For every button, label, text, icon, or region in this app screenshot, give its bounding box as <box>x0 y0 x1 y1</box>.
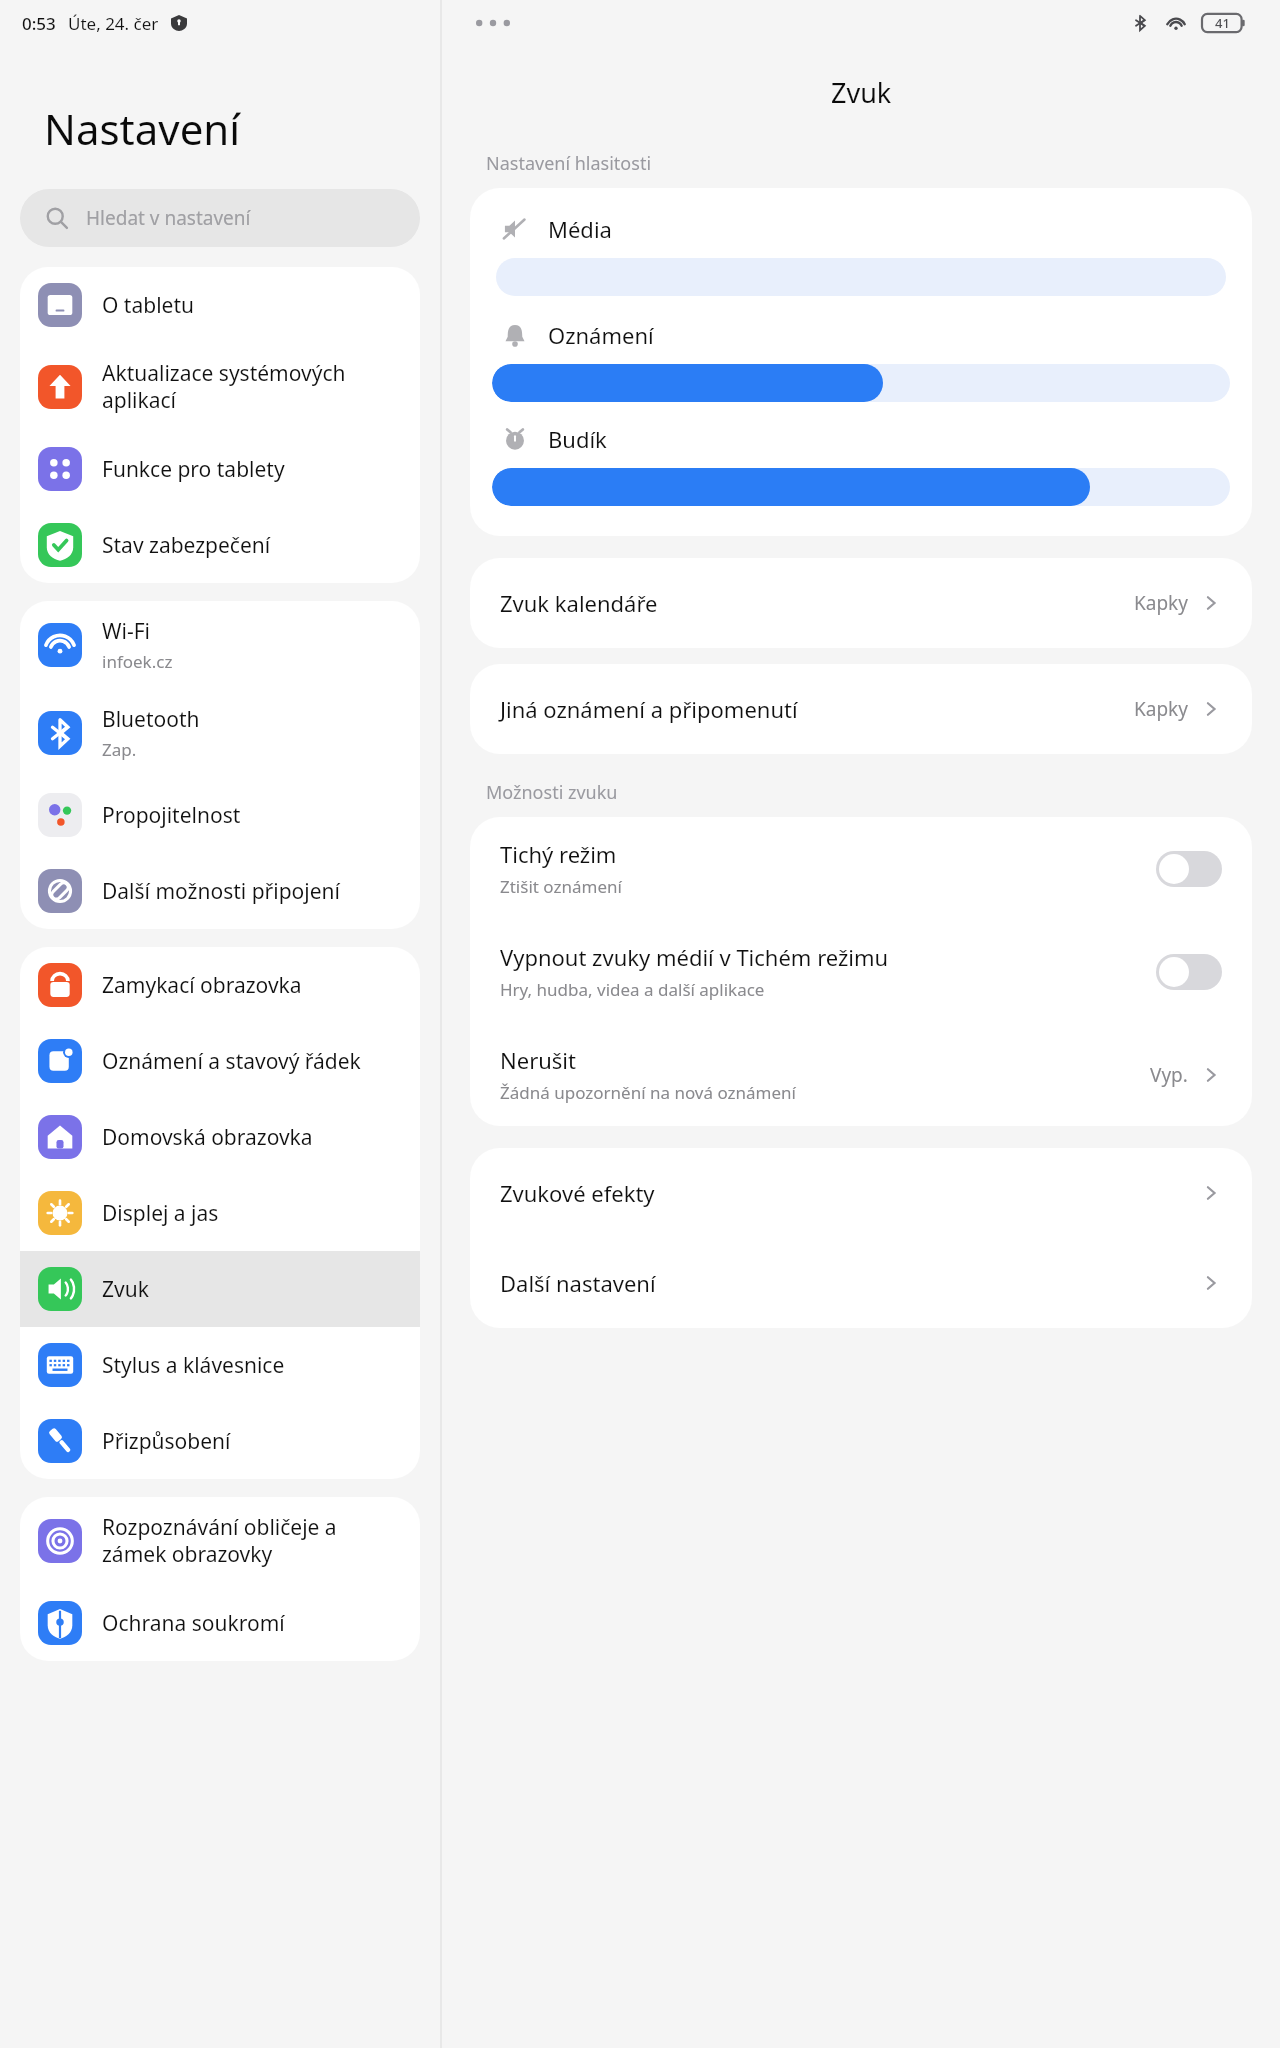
staticText: Tichý režim <box>500 839 617 869</box>
staticText: Budík <box>548 424 607 454</box>
staticText: Hledat v nastavení <box>86 205 251 231</box>
staticText: O tabletu <box>102 291 194 320</box>
staticText: 0:53 <box>22 12 56 35</box>
staticText: Oznámení a stavový řádek <box>102 1047 361 1076</box>
staticText: Kapky <box>1134 590 1188 616</box>
button[interactable]: Hledat v nastavení <box>20 189 420 247</box>
button[interactable]: Funkce pro tablety <box>20 431 420 507</box>
staticText: Přizpůsobení <box>102 1427 231 1456</box>
staticText: Wi-Fi <box>102 617 151 646</box>
staticText: Jiná oznámení a připomenutí <box>500 694 1134 724</box>
staticText: Ochrana soukromí <box>102 1609 285 1638</box>
button[interactable]: Zamykací obrazovka <box>20 947 420 1023</box>
staticText: Další nastavení <box>500 1268 1200 1298</box>
button[interactable]: Rozpoznávání obličeje a zámek obrazovky <box>20 1497 420 1585</box>
other: Open <box>1200 592 1222 614</box>
staticText: Ztišit oznámení <box>500 875 622 898</box>
staticText: Média <box>548 214 612 244</box>
staticText: Zap. <box>102 738 137 761</box>
staticText: Propojitelnost <box>102 801 241 830</box>
button[interactable]: Aktualizace systémových aplikací <box>20 343 420 431</box>
other: Open <box>1200 1064 1222 1086</box>
staticText: Rozpoznávání obličeje a zámek obrazovky <box>102 1513 406 1569</box>
button[interactable]: Další nastavení <box>470 1238 1252 1328</box>
button[interactable]: Oznámení a stavový řádek <box>20 1023 420 1099</box>
button[interactable]: Vypnout zvuky médií v Tichém režimu <box>470 920 1252 1023</box>
staticText: Domovská obrazovka <box>102 1123 313 1152</box>
staticText: Zvukové efekty <box>500 1178 1200 1208</box>
button[interactable]: Další možnosti připojení <box>20 853 420 929</box>
staticText: Možnosti zvuku <box>486 780 618 805</box>
button[interactable]: Domovská obrazovka <box>20 1099 420 1175</box>
staticText: Vyp. <box>1150 1062 1188 1088</box>
button[interactable]: Nerušit <box>470 1023 1252 1126</box>
button[interactable] <box>492 468 1230 506</box>
staticText: Nerušit <box>500 1045 576 1075</box>
staticText: Vypnout zvuky médií v Tichém režimu <box>500 942 889 972</box>
button[interactable]: Zvuk <box>20 1251 420 1327</box>
button[interactable]: Zvukové efekty <box>470 1148 1252 1238</box>
staticText: Displej a jas <box>102 1199 219 1228</box>
staticText: Aktualizace systémových aplikací <box>102 359 406 415</box>
staticText: Hry, hudba, videa a další aplikace <box>500 978 765 1001</box>
button[interactable]: Stylus a klávesnice <box>20 1327 420 1403</box>
staticText: Úte, 24. čer <box>68 12 159 35</box>
button[interactable]: Bluetooth <box>20 689 420 777</box>
staticText: Stav zabezpečení <box>102 531 271 560</box>
other: Open <box>1200 1272 1222 1294</box>
button[interactable]: Jiná oznámení a připomenutí <box>470 664 1252 754</box>
button[interactable]: Tichý režim <box>470 817 1252 920</box>
button[interactable]: Displej a jas <box>20 1175 420 1251</box>
staticText: Zvuk <box>831 74 892 111</box>
button[interactable]: Stav zabezpečení <box>20 507 420 583</box>
button[interactable]: O tabletu <box>20 267 420 343</box>
staticText: Kapky <box>1134 696 1188 722</box>
staticText: Další možnosti připojení <box>102 877 340 906</box>
button[interactable] <box>492 364 1230 402</box>
button[interactable]: Propojitelnost <box>20 777 420 853</box>
staticText: Zvuk <box>102 1275 149 1304</box>
staticText: Stylus a klávesnice <box>102 1351 285 1380</box>
staticText: Zamykací obrazovka <box>102 971 302 1000</box>
staticText: Zvuk kalendáře <box>500 588 1134 618</box>
staticText: Nastavení hlasitosti <box>486 151 652 176</box>
staticText: Žádná upozornění na nová oznámení <box>500 1081 796 1104</box>
staticText: Funkce pro tablety <box>102 455 285 484</box>
button[interactable]: Přizpůsobení <box>20 1403 420 1479</box>
button[interactable]: Ochrana soukromí <box>20 1585 420 1661</box>
staticText: infoek.cz <box>102 650 173 673</box>
staticText: Oznámení <box>548 320 654 350</box>
staticText: 41 <box>1215 14 1230 32</box>
other: Open <box>1200 1182 1222 1204</box>
button[interactable]: Wi-Fi <box>20 601 420 689</box>
other: Open <box>1200 698 1222 720</box>
staticText: Bluetooth <box>102 705 200 734</box>
staticText: Nastavení <box>44 100 241 157</box>
button[interactable]: Zvuk kalendáře <box>470 558 1252 648</box>
